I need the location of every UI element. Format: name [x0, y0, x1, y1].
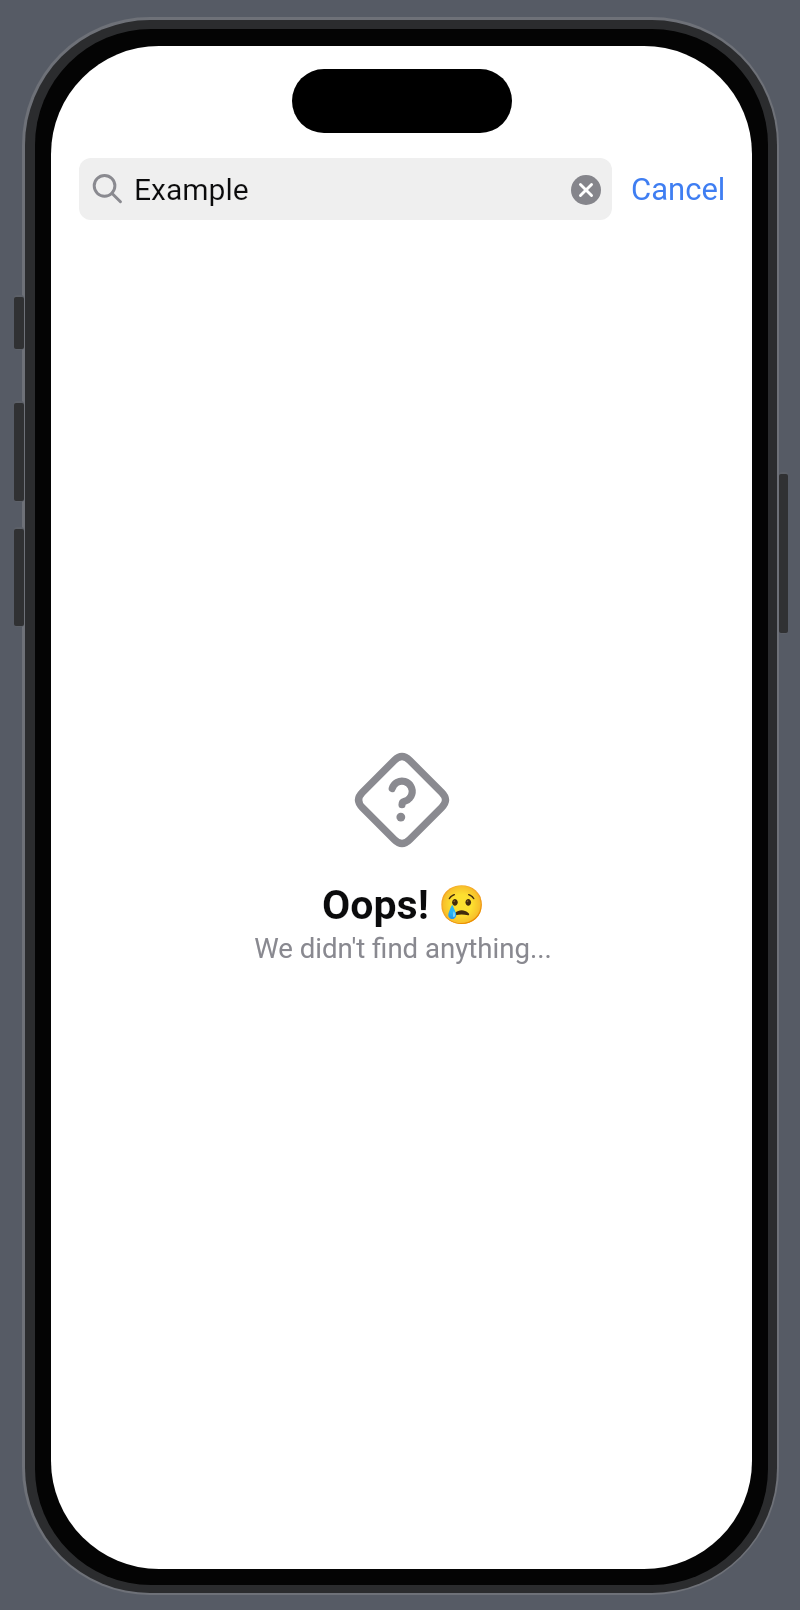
button[interactable]: Example [79, 158, 612, 220]
staticText: Example [134, 172, 249, 207]
button[interactable]: Clear search [564, 168, 607, 211]
staticText: Cancel [631, 171, 726, 207]
staticText: 😢 [438, 883, 486, 928]
staticText: We didn't find anything... [254, 932, 552, 964]
staticText: Oops! [322, 881, 429, 929]
button[interactable]: Cancel [624, 158, 732, 220]
